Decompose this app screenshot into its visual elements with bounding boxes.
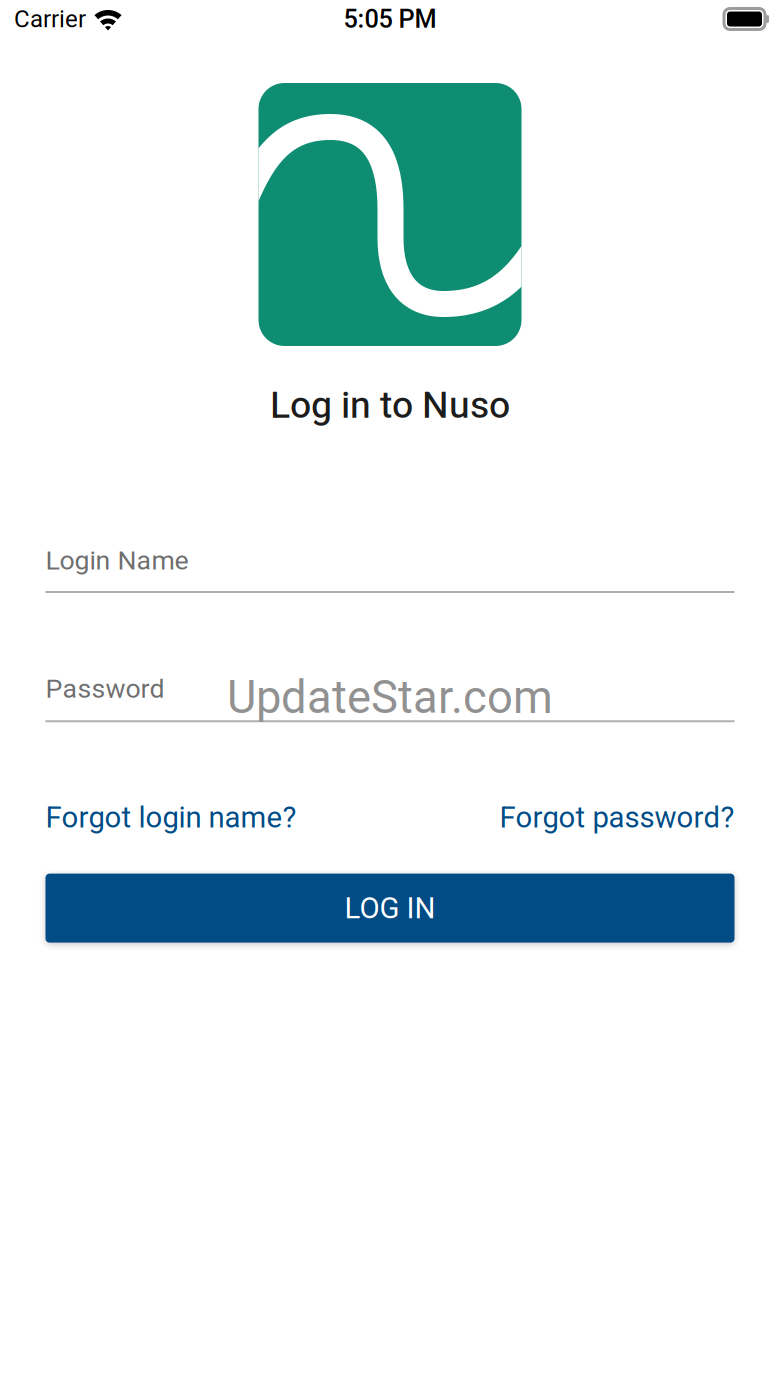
staticText: Password [45, 673, 164, 704]
button[interactable]: Forgot password? [499, 800, 734, 835]
staticText: Forgot password? [499, 800, 734, 835]
staticText: 5:05 PM [343, 4, 436, 34]
staticText: LOG IN [344, 891, 435, 925]
staticText: Log in to Nuso [270, 383, 510, 427]
staticText: UpdateStar.com [227, 671, 553, 724]
button[interactable]: LOG IN [45, 874, 734, 943]
staticText: Carrier [14, 5, 86, 33]
staticText: Login Name [45, 545, 188, 576]
button[interactable]: Forgot login name? [45, 800, 296, 835]
staticText: Forgot login name? [45, 800, 296, 835]
